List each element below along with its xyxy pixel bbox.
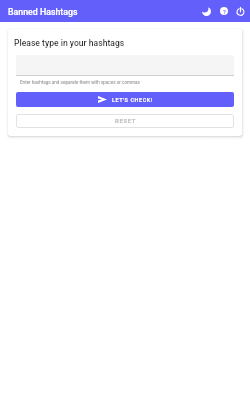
staticText: ?	[223, 8, 226, 15]
staticText: Enter hashtags and separate them with sp…	[20, 80, 140, 85]
staticText: RESET	[115, 117, 136, 124]
button[interactable]: RESET	[16, 114, 234, 128]
staticText: Banned Hashtags	[8, 7, 78, 17]
button[interactable]: Dark mode	[198, 0, 215, 22]
button[interactable]: Power	[232, 0, 249, 22]
staticText: Please type in your hashtags	[14, 38, 125, 48]
button[interactable]	[16, 55, 234, 76]
button[interactable]: Help	[215, 0, 232, 22]
staticText: LET'S CHECK!	[112, 97, 153, 103]
button[interactable]: LET'S CHECK!	[16, 92, 234, 107]
